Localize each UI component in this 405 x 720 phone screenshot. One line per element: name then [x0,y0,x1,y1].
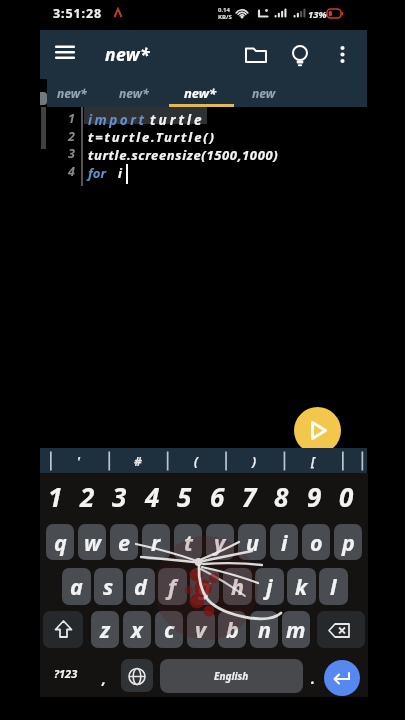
staticText: for [88,164,106,182]
staticText: 1 [68,110,75,127]
staticText: q [54,528,67,557]
staticText: new* [184,84,217,102]
button[interactable]: q [46,524,74,560]
button[interactable]: t [174,524,202,560]
staticText: [ [311,453,315,469]
staticText: new [252,85,276,101]
button[interactable] [47,79,97,107]
button[interactable]: m [282,611,310,648]
button[interactable]: x [123,611,151,648]
button[interactable] [239,40,273,70]
button[interactable] [239,79,289,107]
button[interactable]: k [287,568,316,605]
staticText: new* [57,85,87,101]
staticText: j [266,572,273,601]
staticText: . [311,669,316,688]
staticText: u [246,528,259,557]
button[interactable]: l [319,568,348,605]
staticText: m [286,615,306,644]
button[interactable] [40,448,367,473]
button[interactable]: English [160,659,303,693]
staticText: turtle.screensize(1500,1000) [88,146,279,164]
staticText: t [184,528,193,557]
staticText: turtle [150,111,205,129]
staticText: 8 [274,479,289,514]
staticText: i [118,164,122,182]
staticText: new* [105,42,150,66]
staticText: v [195,615,207,644]
button[interactable] [327,40,357,70]
button[interactable] [48,40,82,70]
button[interactable]: u [238,524,266,560]
staticText: , [102,669,107,688]
staticText: x [131,615,143,644]
button[interactable]: p [334,524,362,560]
button[interactable]: c [155,611,183,648]
button[interactable]: b [218,611,246,648]
button[interactable]: ?123 [46,654,86,693]
button[interactable] [324,660,360,696]
button[interactable]: i [270,524,298,560]
button[interactable] [43,611,83,648]
button[interactable] [294,407,341,454]
staticText: ?123 [54,666,78,681]
staticText: 1 [48,479,63,514]
button[interactable]: y [206,524,234,560]
staticText: 13% [308,8,327,21]
button[interactable]: z [91,611,119,648]
staticText: a [70,572,83,601]
staticText: 5 [177,479,192,514]
staticText: 2 [68,128,75,145]
staticText: z [100,615,111,644]
staticText: English [214,669,249,683]
button[interactable]: j [255,568,284,605]
button[interactable] [175,79,225,107]
staticText: KB/S [218,13,232,21]
button[interactable]: d [126,568,155,605]
staticText: c [164,615,175,644]
button[interactable]: w [78,524,106,560]
staticText: 3 [112,479,127,514]
staticText: 4 [145,479,160,514]
staticText: 2 [80,479,95,514]
button[interactable] [317,611,365,648]
staticText: d [134,572,147,601]
staticText: new* [119,85,149,101]
staticText: l [330,572,337,601]
button[interactable]: g [190,568,219,605]
staticText: 9 [307,479,322,514]
button[interactable]: a [62,568,91,605]
staticText: 3:51:28 [53,5,103,22]
staticText: i [281,528,288,557]
staticText: import [88,111,147,129]
button[interactable] [121,659,153,692]
button[interactable]: n [250,611,278,648]
button[interactable]: e [110,524,138,560]
staticText: o [310,528,323,557]
staticText: ( [194,453,199,469]
button[interactable] [109,79,159,107]
staticText: s [103,572,114,601]
button[interactable]: o [302,524,330,560]
staticText: # [134,453,142,469]
staticText: f [168,572,177,601]
staticText: g [198,572,211,601]
staticText: n [258,615,271,644]
staticText: 7 [242,479,257,514]
staticText: b [226,615,239,644]
staticText: y [214,528,226,557]
button[interactable]: s [94,568,123,605]
button[interactable]: v [187,611,215,648]
button[interactable] [283,40,317,70]
staticText: p [342,528,355,557]
staticText: ' [77,453,81,469]
staticText: w [84,528,101,557]
staticText: 3 [68,145,75,162]
staticText: ) [252,453,257,469]
button[interactable]: h [223,568,252,605]
staticText: 4 [68,163,75,180]
staticText: e [118,528,130,557]
staticText: t=turtle.Turtle() [88,128,216,146]
button[interactable]: f [158,568,187,605]
button[interactable]: r [142,524,170,560]
